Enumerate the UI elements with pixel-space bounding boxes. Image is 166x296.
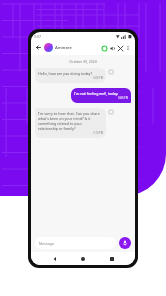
staticText: Aminare [55, 45, 72, 51]
staticText: 5:06 PM [74, 96, 128, 100]
button[interactable]: I'm sorry to hear that. Can you share wh… [35, 108, 106, 138]
button[interactable]: Voice message [119, 237, 131, 249]
button[interactable]: Profile [44, 43, 53, 52]
button[interactable]: Recent apps [107, 254, 117, 264]
button[interactable]: Speaker [108, 44, 116, 52]
staticText: Message [39, 241, 54, 246]
button[interactable]: Home [78, 254, 88, 264]
button[interactable]: Online [100, 44, 108, 52]
button[interactable]: Back [34, 43, 43, 52]
button[interactable]: I'm not feeling well, today. [71, 88, 131, 103]
staticText: Hello, how are you doing today? [38, 71, 93, 76]
button[interactable]: Hello, how are you doing today? [35, 68, 106, 83]
button[interactable]: Message [35, 237, 116, 249]
staticText: 5:10 PM [38, 131, 103, 135]
button[interactable]: More options [124, 44, 132, 52]
button[interactable]: Back [50, 254, 60, 264]
button[interactable]: Report message [108, 109, 113, 114]
button[interactable]: Close [116, 44, 124, 52]
staticText: October 30, 2024 [35, 59, 131, 64]
staticText: I'm not feeling well, today. [74, 91, 119, 96]
staticText: I'm sorry to hear that. Can you share wh… [38, 111, 103, 131]
button[interactable]: Report message [108, 69, 113, 74]
staticText: 9:07 [34, 34, 41, 39]
staticText: 5:06 PM [38, 76, 103, 80]
